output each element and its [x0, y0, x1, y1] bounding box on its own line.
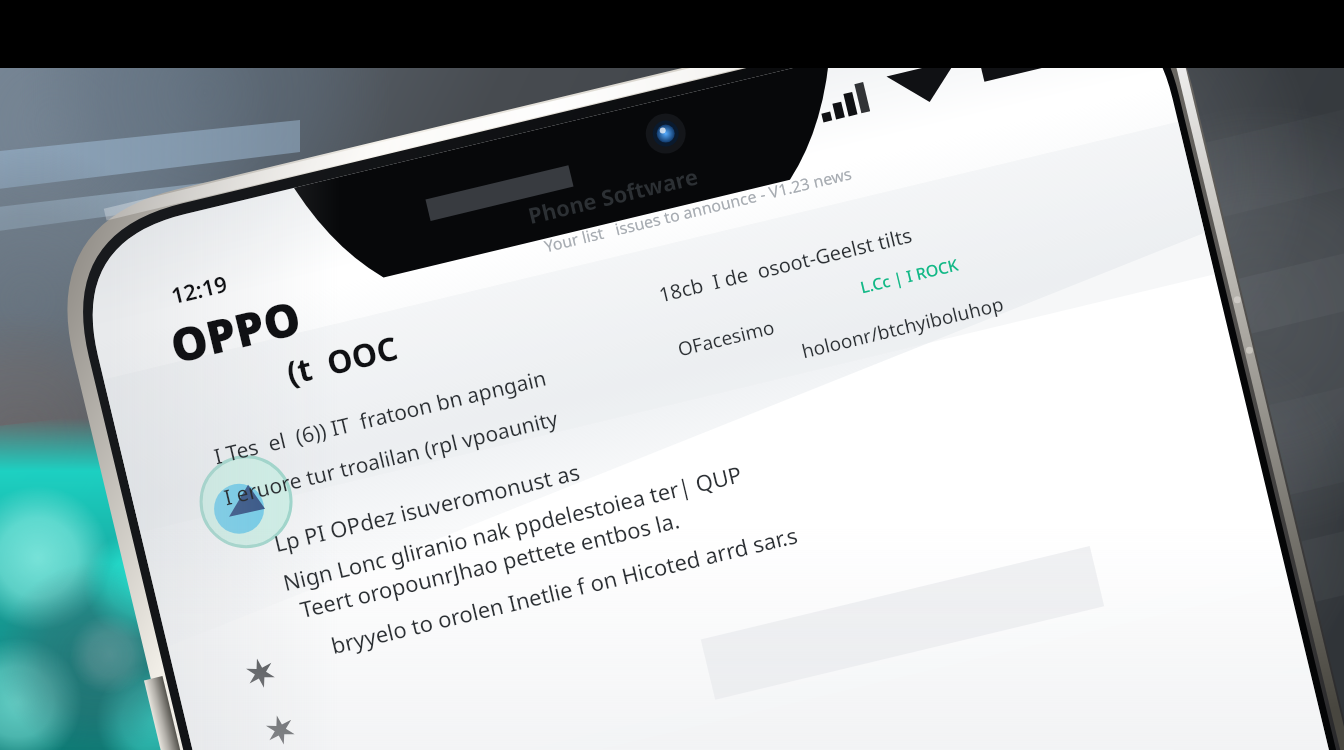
button[interactable]: Open link — [770, 276, 910, 316]
staticText: I Tes el (6)) IT fratoon bn apngain — [211, 363, 549, 471]
staticText: Teert oropounrJhao pettete entbos la. — [297, 504, 682, 624]
staticText: OFacesimo — [675, 314, 777, 362]
button[interactable]: OPPO account — [110, 252, 360, 310]
staticText: L.Cc | I ROCK — [858, 253, 961, 298]
staticText: 12:19 — [168, 268, 230, 310]
staticText: Phone Software — [525, 160, 701, 230]
staticText: holoonr/btchyiboluhop — [799, 291, 1006, 364]
staticText: Nign Lonc gliranio nak ppdelestoiea ter|… — [280, 458, 745, 597]
staticText: Lp PI OPdez isuveromonust as — [271, 456, 583, 558]
button[interactable]: Status bar — [640, 100, 760, 144]
staticText: bryyelo to orolen Inetlie f on Hicoted a… — [328, 519, 801, 660]
staticText: (t OOC — [282, 326, 402, 395]
staticText: OPPO — [164, 285, 307, 377]
staticText: Your list issues to announce - V1.23 new… — [542, 162, 854, 257]
staticText: I eruore tur troalilan (rpl vpoaunity — [221, 404, 561, 512]
staticText: 18cb I de osoot-Geelst tilts — [656, 221, 915, 308]
